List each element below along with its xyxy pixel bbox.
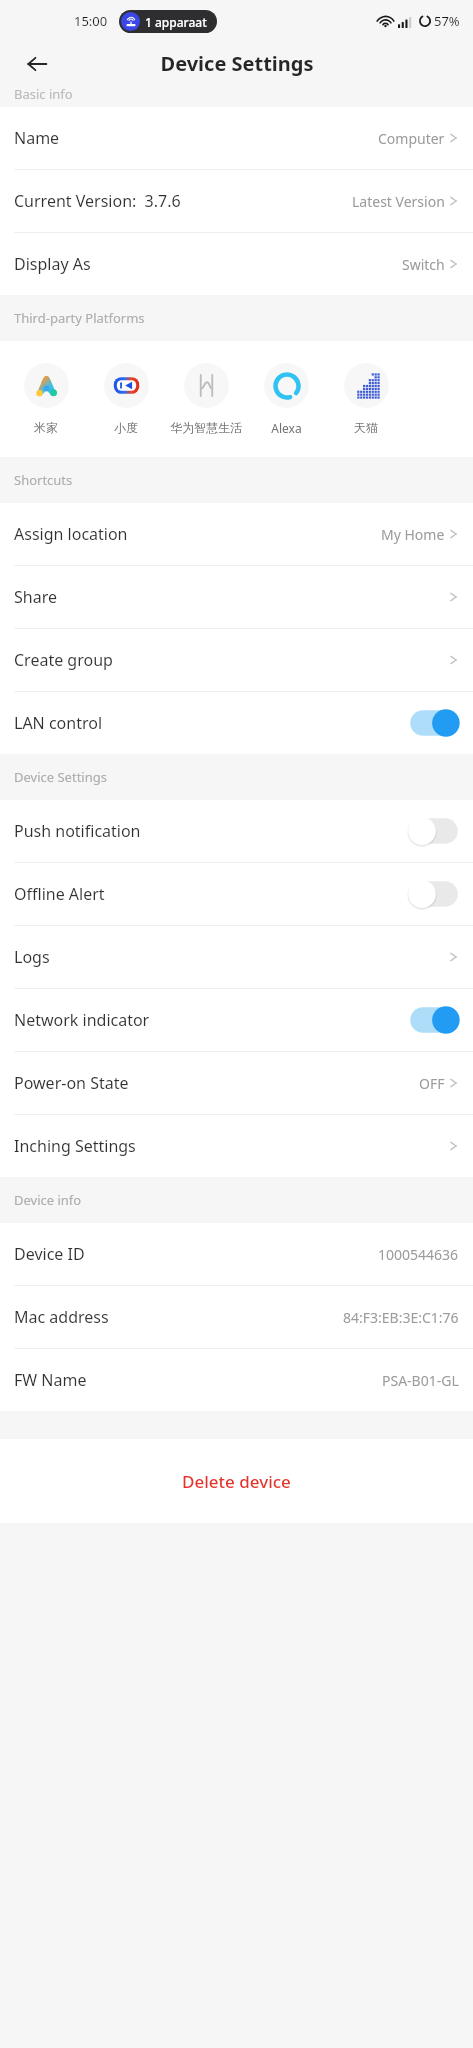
button[interactable]: Delete device: [0, 1439, 473, 1523]
staticText: Network indicator: [14, 1009, 150, 1031]
staticText: Latest Version: [352, 192, 445, 211]
staticText: 1 apparaat: [145, 14, 207, 30]
button[interactable]: Share: [0, 566, 473, 628]
staticText: My Home: [381, 525, 445, 544]
button[interactable]: Name: [0, 107, 473, 169]
button[interactable]: Mac address: [0, 1286, 473, 1348]
staticText: 57%: [434, 12, 460, 30]
staticText: 小度: [114, 420, 138, 435]
button[interactable]: 1 apparaat: [119, 10, 217, 33]
staticText: OFF: [419, 1074, 445, 1093]
staticText: Device ID: [14, 1243, 85, 1265]
button[interactable]: Switch off: [409, 879, 459, 909]
button[interactable]: FW Name: [0, 1349, 473, 1411]
staticText: Current Version: 3.7.6: [14, 190, 181, 212]
staticText: Assign location: [14, 523, 128, 545]
staticText: Name: [14, 127, 60, 149]
staticText: FW Name: [14, 1369, 87, 1391]
button[interactable]: Inching Settings: [0, 1115, 473, 1177]
staticText: Display As: [14, 253, 91, 275]
button[interactable]: 小度: [86, 363, 166, 435]
button[interactable]: Assign location: [0, 503, 473, 565]
staticText: Third-party Platforms: [14, 309, 145, 327]
staticText: Device info: [14, 1191, 82, 1209]
button[interactable]: Create group: [0, 629, 473, 691]
staticText: Offline Alert: [14, 883, 105, 905]
staticText: Basic info: [14, 85, 73, 103]
staticText: Push notification: [14, 820, 141, 842]
staticText: Device Settings: [14, 768, 107, 786]
staticText: 15:00: [74, 12, 108, 30]
button[interactable]: Power-on State: [0, 1052, 473, 1114]
staticText: 华为智慧生活: [170, 420, 242, 435]
staticText: Mac address: [14, 1306, 109, 1328]
button[interactable]: Switch off: [409, 816, 459, 846]
staticText: Switch: [402, 255, 445, 274]
button[interactable]: 天猫: [326, 363, 406, 435]
staticText: Computer: [378, 129, 445, 148]
button[interactable]: 华为智慧生活: [166, 363, 246, 435]
button[interactable]: Logs: [0, 926, 473, 988]
staticText: Create group: [14, 649, 113, 671]
staticText: 天猫: [354, 420, 378, 435]
staticText: Share: [14, 586, 57, 608]
button[interactable]: 米家: [6, 363, 86, 435]
staticText: 1000544636: [378, 1245, 459, 1264]
staticText: Delete device: [182, 1470, 291, 1493]
button[interactable]: Switch on: [409, 1005, 459, 1035]
button[interactable]: Back: [19, 46, 55, 82]
staticText: 84:F3:EB:3E:C1:76: [343, 1308, 459, 1327]
staticText: PSA-B01-GL: [382, 1371, 459, 1390]
button[interactable]: Display As: [0, 233, 473, 295]
staticText: LAN control: [14, 712, 103, 734]
staticText: Logs: [14, 946, 50, 968]
button[interactable]: Alexa: [246, 363, 326, 436]
staticText: Shortcuts: [14, 471, 73, 489]
staticText: Alexa: [271, 420, 302, 436]
staticText: Device Settings: [160, 50, 314, 77]
staticText: Inching Settings: [14, 1135, 136, 1157]
staticText: 米家: [34, 420, 58, 435]
button[interactable]: Device ID: [0, 1223, 473, 1285]
staticText: Power-on State: [14, 1072, 129, 1094]
button[interactable]: Switch on: [409, 708, 459, 738]
button[interactable]: Current Version: 3.7.6: [0, 170, 473, 232]
